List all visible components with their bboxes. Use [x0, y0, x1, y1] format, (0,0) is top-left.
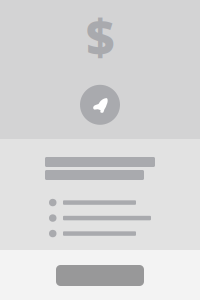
staticText: $: [86, 3, 114, 69]
button[interactable]: Continue: [56, 265, 144, 286]
